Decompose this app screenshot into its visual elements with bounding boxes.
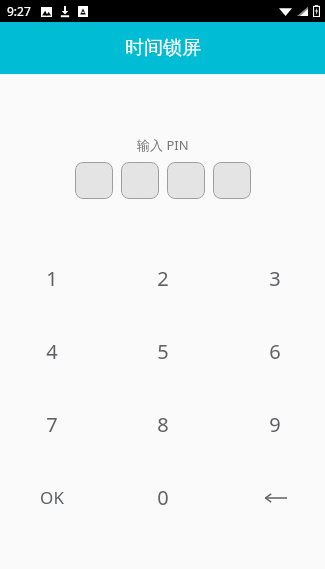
button[interactable]: 4 (24, 334, 80, 369)
button[interactable]: PIN digit (167, 162, 205, 199)
staticText: 时间锁屏 (125, 36, 201, 60)
button[interactable]: 5 (135, 334, 191, 369)
staticText: 7 (46, 411, 58, 438)
staticText: 0 (157, 484, 169, 511)
button[interactable]: 2 (135, 261, 191, 296)
staticText: OK (40, 486, 64, 509)
button[interactable]: 0 (135, 480, 191, 515)
button[interactable]: OK (24, 480, 80, 515)
staticText: 2 (157, 265, 169, 292)
button[interactable]: PIN digit (121, 162, 159, 199)
button[interactable]: 8 (135, 407, 191, 442)
button[interactable]: Backspace (247, 480, 303, 515)
button[interactable]: 1 (24, 261, 80, 296)
staticText: 6 (269, 338, 281, 365)
staticText: 3 (269, 265, 281, 292)
button[interactable]: 9 (247, 407, 303, 442)
staticText: 5 (157, 338, 169, 365)
button[interactable]: PIN digit (75, 162, 113, 199)
staticText: 4 (46, 338, 58, 365)
button[interactable]: 6 (247, 334, 303, 369)
button[interactable]: 3 (247, 261, 303, 296)
staticText: 1 (46, 265, 58, 292)
staticText: 9 (269, 411, 281, 438)
staticText: 9:27 (7, 3, 31, 19)
button[interactable]: 7 (24, 407, 80, 442)
staticText: 8 (157, 411, 169, 438)
button[interactable]: PIN digit (213, 162, 251, 199)
staticText: 输入 PIN (137, 136, 189, 154)
